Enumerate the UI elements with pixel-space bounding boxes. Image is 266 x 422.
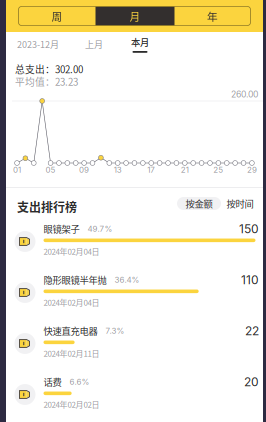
staticText: 隐形眼镜半年抛 xyxy=(43,273,106,286)
staticText: 22 xyxy=(245,323,259,338)
staticText: 眼镜架子 xyxy=(43,222,79,235)
staticText: 7.3% xyxy=(105,326,124,336)
staticText xyxy=(106,275,114,285)
button[interactable]: 上月 xyxy=(85,37,103,51)
staticText: 29 xyxy=(247,165,257,175)
button[interactable]: 隐形眼镜半年抛 xyxy=(6,267,263,318)
staticText: 年 xyxy=(207,8,218,24)
staticText: 2024年02月02日 xyxy=(43,398,99,410)
button[interactable]: 按时间 xyxy=(225,197,255,210)
staticText: 09 xyxy=(79,165,89,175)
staticText: 110 xyxy=(241,272,259,287)
button[interactable]: 按金额 xyxy=(177,197,221,210)
staticText: 上月 xyxy=(85,37,103,50)
staticText: 2024年02月04日 xyxy=(43,296,99,308)
button[interactable]: 周 xyxy=(18,6,95,25)
staticText: 21 xyxy=(181,165,189,175)
staticText: 话费 xyxy=(43,375,61,388)
button[interactable]: 本月 xyxy=(129,36,151,53)
staticText: 2024年02月04日 xyxy=(43,245,99,257)
staticText: 2024年02月11日 xyxy=(43,347,99,359)
staticText: 周 xyxy=(51,8,62,24)
staticText: 49.7% xyxy=(87,224,112,234)
button[interactable]: 月 xyxy=(95,6,174,25)
button[interactable]: 2023-12月 xyxy=(17,37,59,51)
staticText: 支出排行榜 xyxy=(17,198,77,215)
staticText: 快速直充电器 xyxy=(43,324,97,337)
staticText: 150 xyxy=(239,221,259,236)
staticText: 按金额 xyxy=(185,197,212,210)
staticText: 按时间 xyxy=(226,197,253,210)
staticText: 本月 xyxy=(131,35,149,49)
button[interactable]: 话费 xyxy=(6,369,263,420)
staticText: 05 xyxy=(45,165,55,175)
button[interactable]: 眼镜架子 xyxy=(6,216,263,267)
staticText: 6.6% xyxy=(69,377,89,387)
staticText: 平均值：23.23 xyxy=(15,74,78,89)
staticText: 25 xyxy=(213,165,223,175)
button[interactable]: 快速直充电器 xyxy=(6,318,263,369)
staticText: 20 xyxy=(244,374,259,389)
staticText: 13 xyxy=(114,165,122,175)
staticText: 月 xyxy=(129,8,140,24)
staticText: 01 xyxy=(13,165,21,175)
button[interactable]: 年 xyxy=(174,6,250,25)
staticText: 总支出：302.00 xyxy=(15,62,83,76)
staticText: 36.4% xyxy=(114,275,139,285)
staticText: 260.00 xyxy=(231,89,258,99)
staticText xyxy=(61,377,69,387)
staticText: 17 xyxy=(147,165,155,175)
staticText: 2023-12月 xyxy=(17,37,59,50)
